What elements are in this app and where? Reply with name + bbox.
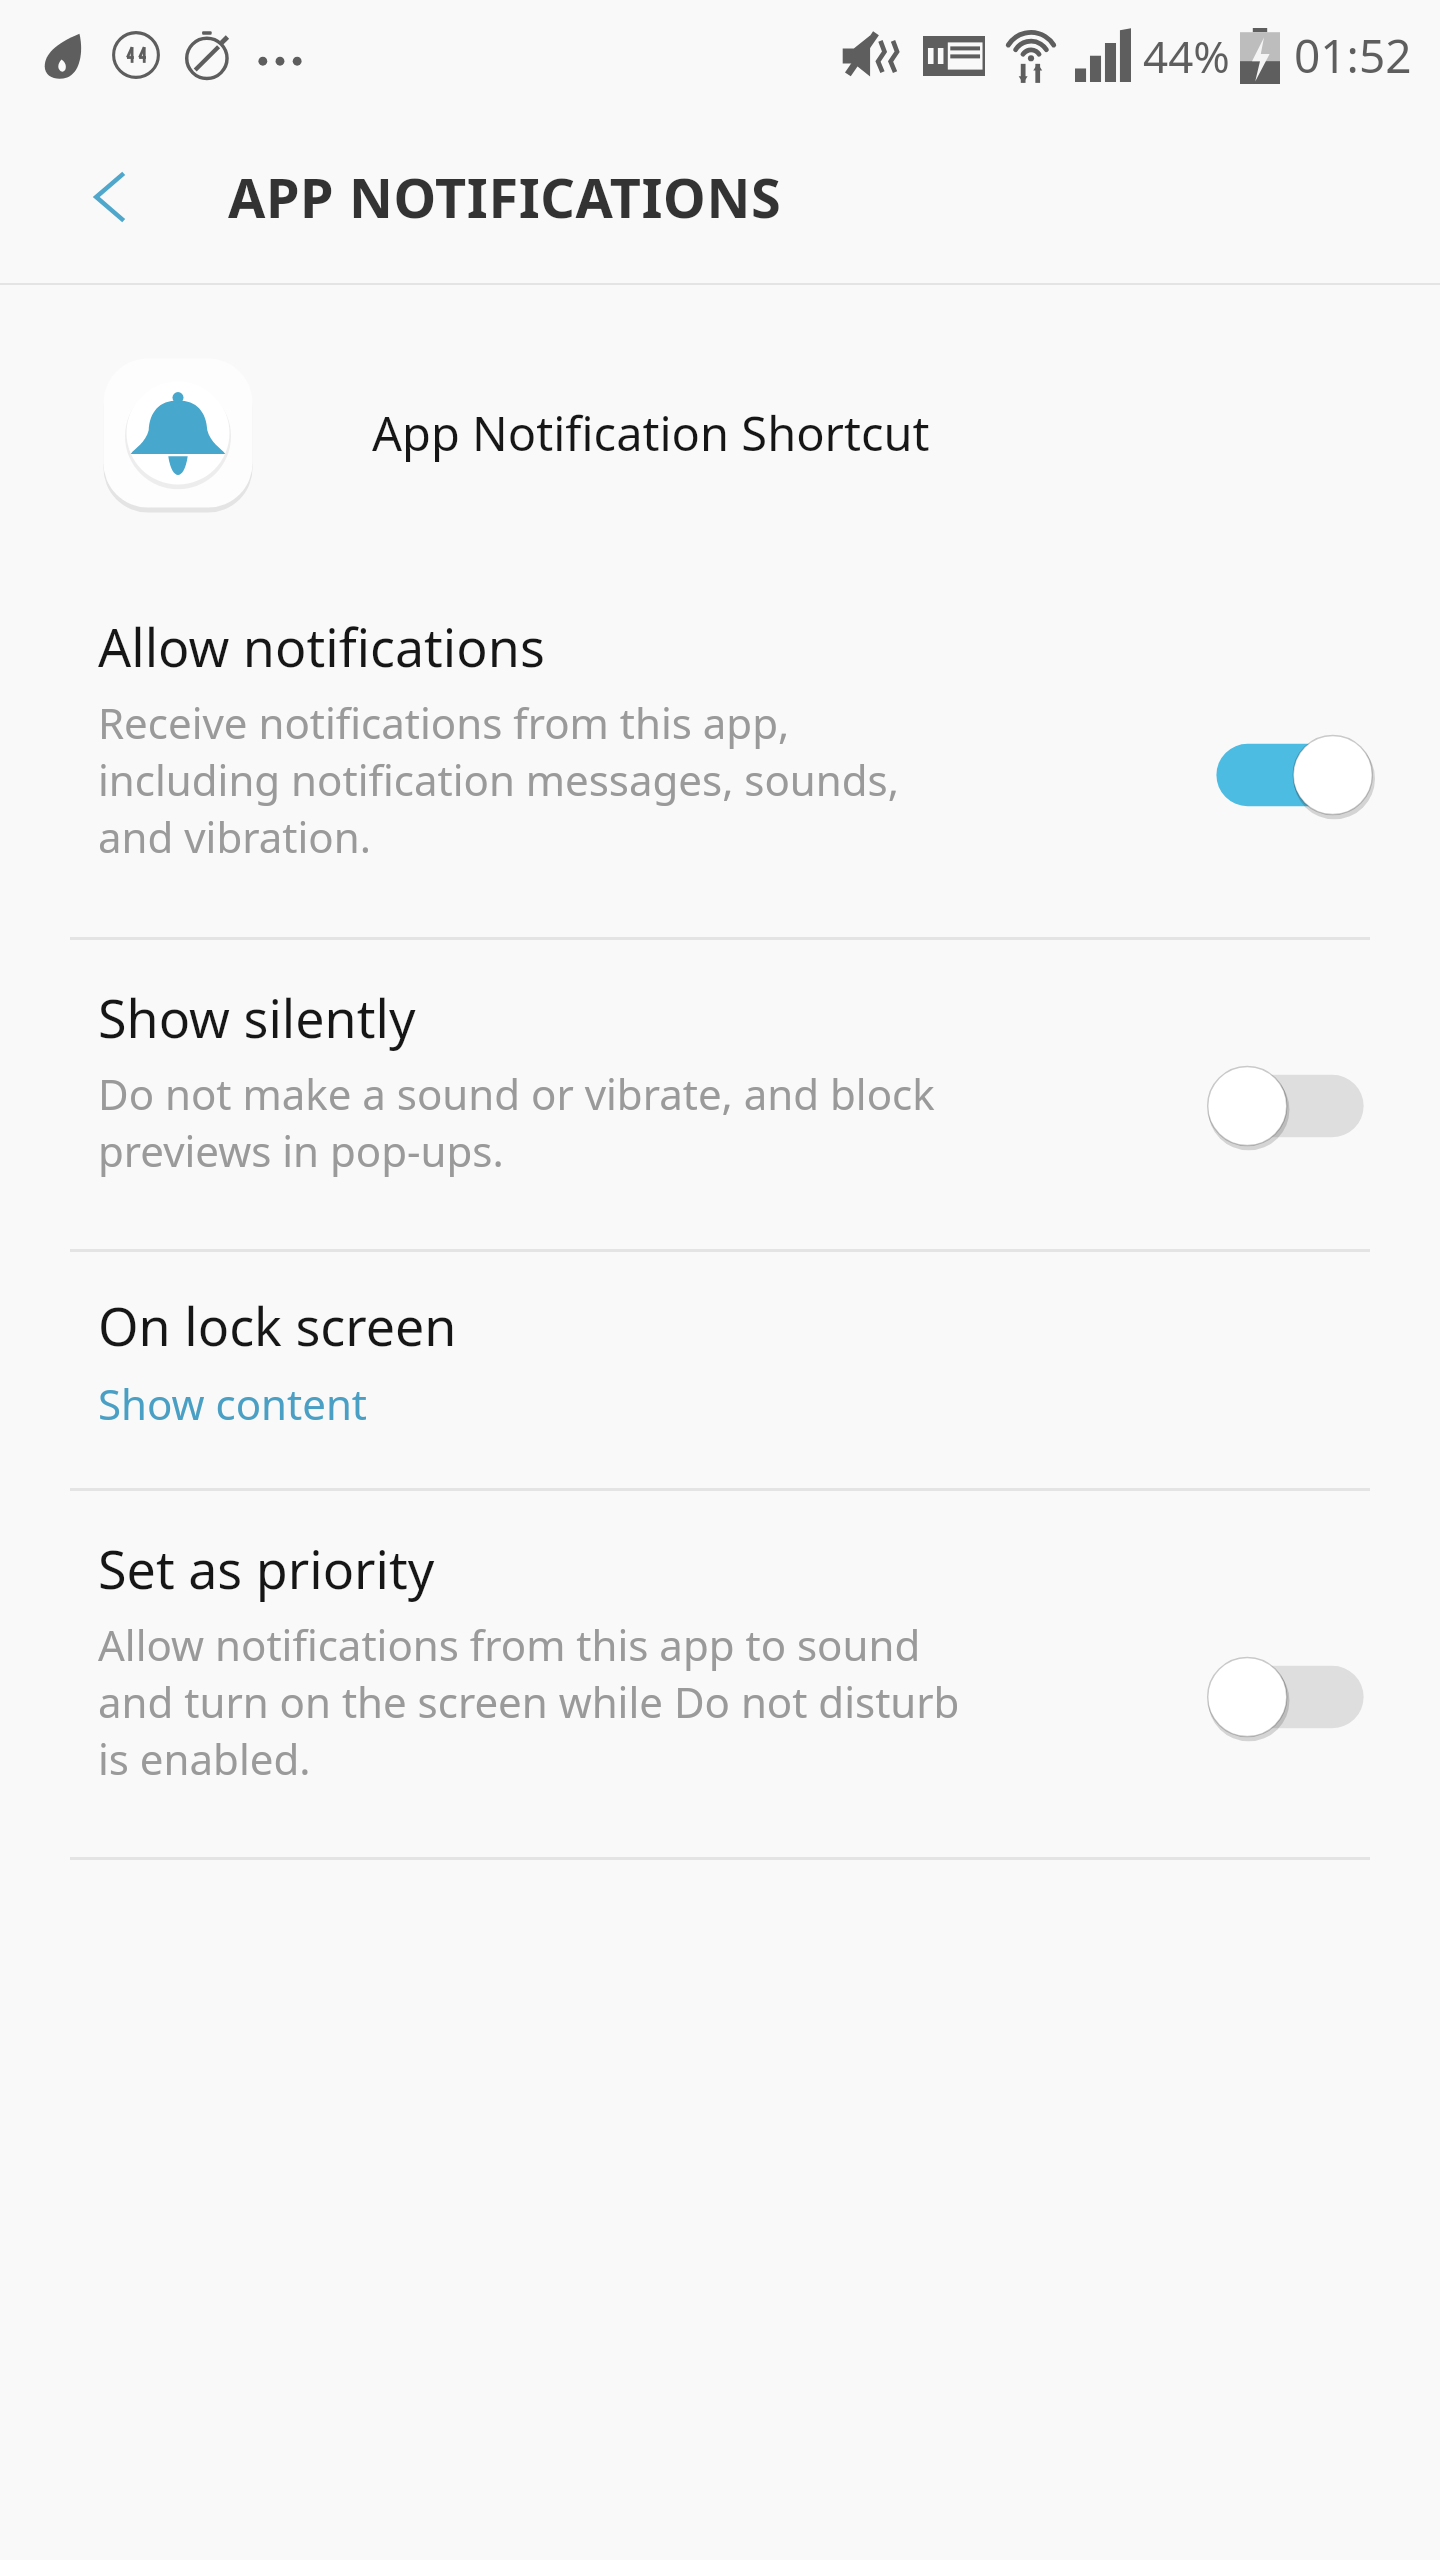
staticText: Set as priority bbox=[98, 1533, 435, 1604]
staticText: is enabled. bbox=[98, 1730, 311, 1787]
staticText: previews in pop-ups. bbox=[98, 1122, 504, 1179]
staticText: Allow notifications from this app to sou… bbox=[98, 1616, 921, 1673]
staticText: Do not make a sound or vibrate, and bloc… bbox=[98, 1065, 935, 1122]
staticText: Show content bbox=[98, 1375, 368, 1432]
staticText: APP NOTIFICATIONS bbox=[228, 160, 782, 234]
button[interactable]: Set as priority off bbox=[1210, 1645, 1370, 1749]
staticText: Show silently bbox=[98, 982, 416, 1053]
button[interactable]: Allow notifications on bbox=[1210, 723, 1370, 827]
staticText: 44% bbox=[1143, 26, 1230, 86]
button[interactable]: Show silently off bbox=[1210, 1054, 1370, 1158]
staticText: Receive notifications from this app, bbox=[98, 694, 790, 751]
staticText: and turn on the screen while Do not dist… bbox=[98, 1673, 960, 1730]
button[interactable]: Set as priority bbox=[0, 1491, 1440, 1857]
staticText: On lock screen bbox=[98, 1290, 457, 1361]
staticText: 01:52 bbox=[1294, 24, 1412, 87]
button[interactable]: App Notification Shortcut bbox=[0, 351, 1440, 515]
button[interactable]: Allow notifications bbox=[0, 611, 1440, 937]
button[interactable]: Show silently bbox=[0, 940, 1440, 1249]
button[interactable]: Back bbox=[62, 149, 158, 245]
staticText: Allow notifications bbox=[98, 611, 545, 682]
staticText: App Notification Shortcut bbox=[372, 401, 930, 465]
staticText: and vibration. bbox=[98, 808, 371, 865]
button[interactable]: On lock screen bbox=[0, 1252, 1440, 1488]
staticText: including notification messages, sounds, bbox=[98, 751, 899, 808]
